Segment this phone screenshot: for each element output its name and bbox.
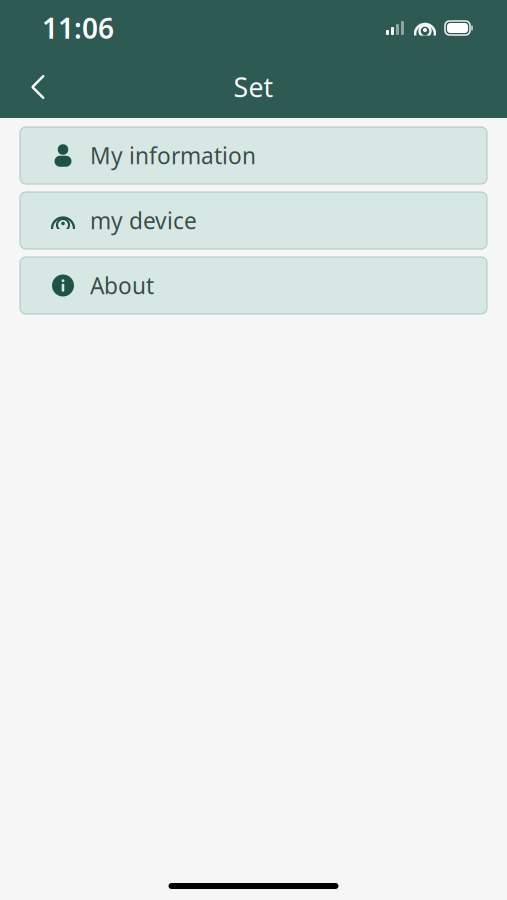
button[interactable]: my device: [20, 192, 487, 249]
staticText: My information: [90, 140, 256, 170]
staticText: Set: [233, 69, 273, 105]
staticText: my device: [90, 205, 197, 235]
button[interactable]: About: [20, 257, 487, 314]
staticText: About: [90, 270, 154, 300]
button[interactable]: Back: [16, 65, 60, 109]
staticText: 11:06: [42, 9, 114, 47]
button[interactable]: My information: [20, 127, 487, 184]
